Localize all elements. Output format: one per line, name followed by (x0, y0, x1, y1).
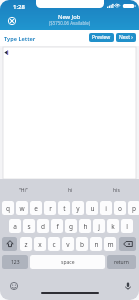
staticText: l (126, 222, 128, 231)
button[interactable]: t (58, 201, 70, 215)
button[interactable]: n (90, 237, 102, 251)
button[interactable]: j (93, 219, 105, 233)
staticText: ($5750.06 Available) (49, 20, 91, 26)
button[interactable]: a (9, 219, 21, 233)
staticText: i (105, 204, 107, 213)
button[interactable]: q (2, 201, 14, 215)
button[interactable]: v (62, 237, 74, 251)
staticText: t (63, 204, 66, 213)
staticText: Type Letter (4, 35, 36, 42)
button[interactable]: hi (47, 179, 93, 201)
staticText: o (118, 204, 122, 213)
button[interactable]: “Hi” (0, 179, 47, 201)
staticText: j (98, 222, 100, 231)
button[interactable]: y (72, 201, 84, 215)
button[interactable]: s (23, 219, 35, 233)
button[interactable]: Next › (116, 33, 136, 42)
staticText: New Job (58, 13, 81, 21)
button[interactable]: x (34, 237, 46, 251)
staticText: k (111, 222, 115, 231)
button[interactable]: k (107, 219, 119, 233)
button[interactable]: Emoji (10, 282, 18, 290)
button[interactable]: w (16, 201, 28, 215)
button[interactable]: e (30, 201, 42, 215)
button[interactable]: return (107, 255, 136, 269)
staticText: m (107, 240, 114, 249)
staticText: e (34, 204, 38, 213)
staticText: w (19, 204, 25, 213)
staticText: s (27, 222, 31, 231)
staticText: b (80, 240, 84, 249)
button[interactable]: d (37, 219, 49, 233)
button[interactable]: his (93, 179, 139, 201)
button[interactable]: l (121, 219, 133, 233)
staticText: y (76, 204, 80, 213)
staticText: h (83, 222, 88, 231)
staticText: a (13, 222, 17, 231)
staticText: d (41, 222, 45, 231)
button[interactable]: 123 (2, 255, 28, 269)
staticText: “Hi” (19, 187, 28, 194)
button[interactable]: p (128, 201, 139, 215)
button[interactable]: Backspace (119, 237, 136, 251)
staticText: z (24, 240, 28, 249)
staticText: hi (68, 187, 73, 194)
button[interactable]: Preview (89, 33, 114, 42)
button[interactable]: f (51, 219, 63, 233)
staticText: f (56, 222, 59, 231)
button[interactable]: h (79, 219, 91, 233)
staticText: x (38, 240, 42, 249)
staticText: Next › (119, 34, 133, 41)
button[interactable]: u (86, 201, 98, 215)
button[interactable]: z (20, 237, 32, 251)
staticText: 123 (11, 259, 20, 266)
button[interactable]: b (76, 237, 88, 251)
staticText: u (90, 204, 95, 213)
button[interactable]: i (100, 201, 112, 215)
button[interactable]: Dictate (124, 282, 132, 290)
staticText: space (61, 259, 75, 266)
button[interactable]: Shift (2, 237, 17, 251)
staticText: q (6, 204, 10, 213)
staticText: c (52, 240, 56, 249)
staticText: n (94, 240, 99, 249)
button[interactable]: c (48, 237, 60, 251)
button[interactable]: r (44, 201, 56, 215)
staticText: p (132, 204, 136, 213)
staticText: return (114, 259, 129, 266)
staticText: 1:28 (13, 3, 25, 11)
staticText: his (113, 187, 120, 194)
staticText: v (66, 240, 70, 249)
button[interactable]: space (30, 255, 105, 269)
button[interactable]: Close (6, 15, 18, 27)
staticText: g (69, 222, 73, 231)
button[interactable]: m (104, 237, 116, 251)
staticText: Preview (92, 34, 111, 41)
button[interactable]: g (65, 219, 77, 233)
staticText: r (49, 204, 52, 213)
button[interactable]: o (114, 201, 126, 215)
